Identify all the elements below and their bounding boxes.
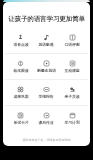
button[interactable]: 口语评测 — [59, 28, 85, 53]
button[interactable]: 新概念英语 — [33, 54, 59, 79]
button[interactable]: 亲子共读 — [59, 80, 85, 105]
button[interactable]: 绘本跟读 — [8, 54, 33, 79]
staticText: 互动课堂 — [64, 68, 80, 73]
button[interactable]: 互动课堂 — [59, 54, 85, 79]
staticText: 成果巩固 — [13, 94, 29, 99]
staticText: 课后作业 — [38, 120, 54, 125]
button[interactable]: 单词卡片 — [8, 106, 33, 131]
staticText: 语音点读 — [13, 42, 29, 47]
staticText: 单词卡片 — [13, 120, 29, 125]
button[interactable]: 语音点读 — [8, 28, 33, 53]
staticText: 口语评测 — [64, 42, 80, 47]
staticText: 学情报告 — [38, 94, 54, 99]
staticText: 英语歌谣 — [38, 42, 54, 47]
button[interactable]: 英语歌谣 — [33, 28, 59, 53]
staticText: 新概念英语 — [37, 68, 56, 73]
staticText: 让孩子的语言学习更加简单 — [3, 15, 90, 23]
staticText: 学习计划 — [64, 120, 80, 125]
staticText: 该应用包含广告，详情参见应用说明 — [3, 138, 90, 142]
button[interactable]: 成果巩固 — [8, 80, 33, 105]
staticText: 绘本跟读 — [13, 68, 29, 73]
staticText: 亲子共读 — [64, 94, 80, 99]
button[interactable]: 学情报告 — [33, 80, 59, 105]
button[interactable]: 学习计划 — [59, 106, 85, 131]
button[interactable]: 课后作业 — [33, 106, 59, 131]
